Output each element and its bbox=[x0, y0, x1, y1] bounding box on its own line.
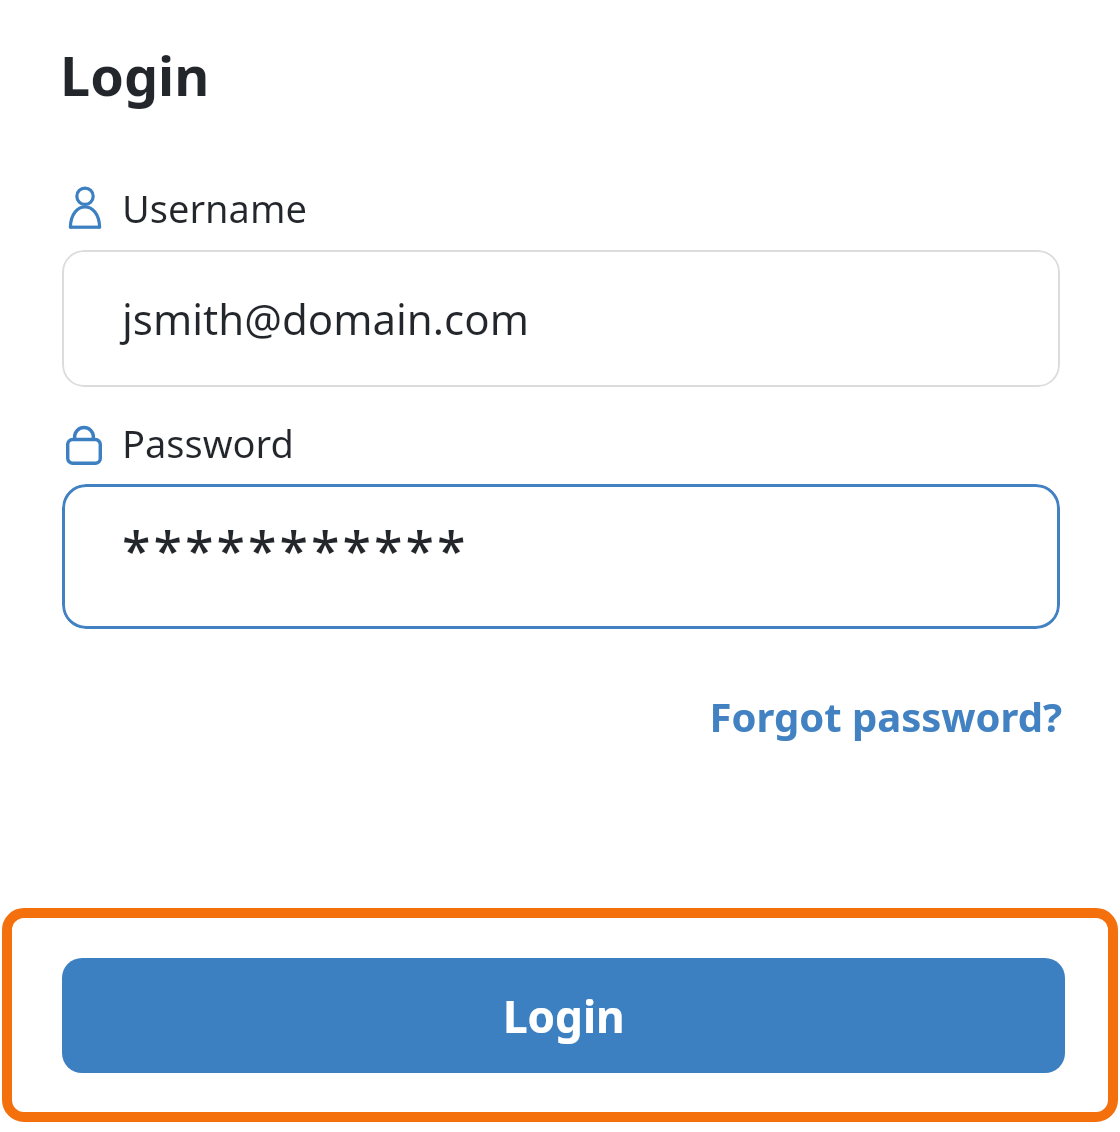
button[interactable]: *********** bbox=[62, 484, 1060, 629]
staticText: Login bbox=[60, 38, 210, 112]
staticText: Login bbox=[503, 986, 625, 1046]
button[interactable]: Forgot password? bbox=[709, 689, 1062, 743]
button[interactable]: jsmith@domain.com bbox=[62, 250, 1060, 387]
staticText: *********** bbox=[122, 514, 469, 585]
staticText: Password bbox=[122, 417, 294, 469]
staticText: Username bbox=[122, 182, 307, 234]
button[interactable]: Login bbox=[2, 908, 1118, 1122]
staticText: jsmith@domain.com bbox=[122, 290, 529, 347]
